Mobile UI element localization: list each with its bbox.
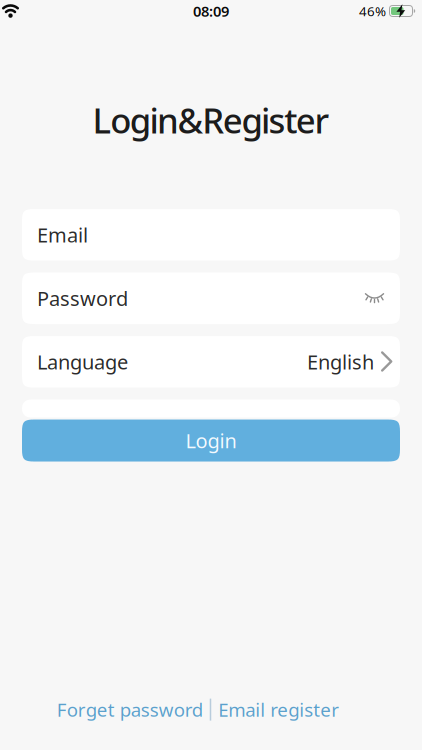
staticText: Login&Register xyxy=(93,97,329,143)
staticText: Forget password xyxy=(57,697,203,722)
button[interactable]: Email register xyxy=(218,697,339,722)
button[interactable]: Forget password xyxy=(57,697,203,722)
button[interactable]: Password xyxy=(22,272,400,324)
staticText: 46% xyxy=(359,2,386,20)
button[interactable]: Language xyxy=(22,336,400,387)
staticText: Email xyxy=(37,221,88,248)
staticText: Login xyxy=(185,427,236,454)
staticText: English xyxy=(307,348,374,375)
button[interactable]: Email xyxy=(22,209,400,260)
staticText: Email register xyxy=(218,697,339,722)
button[interactable]: Login xyxy=(22,419,400,461)
staticText: Password xyxy=(37,285,128,312)
staticText: Language xyxy=(37,348,128,375)
staticText: 08:09 xyxy=(193,1,229,21)
